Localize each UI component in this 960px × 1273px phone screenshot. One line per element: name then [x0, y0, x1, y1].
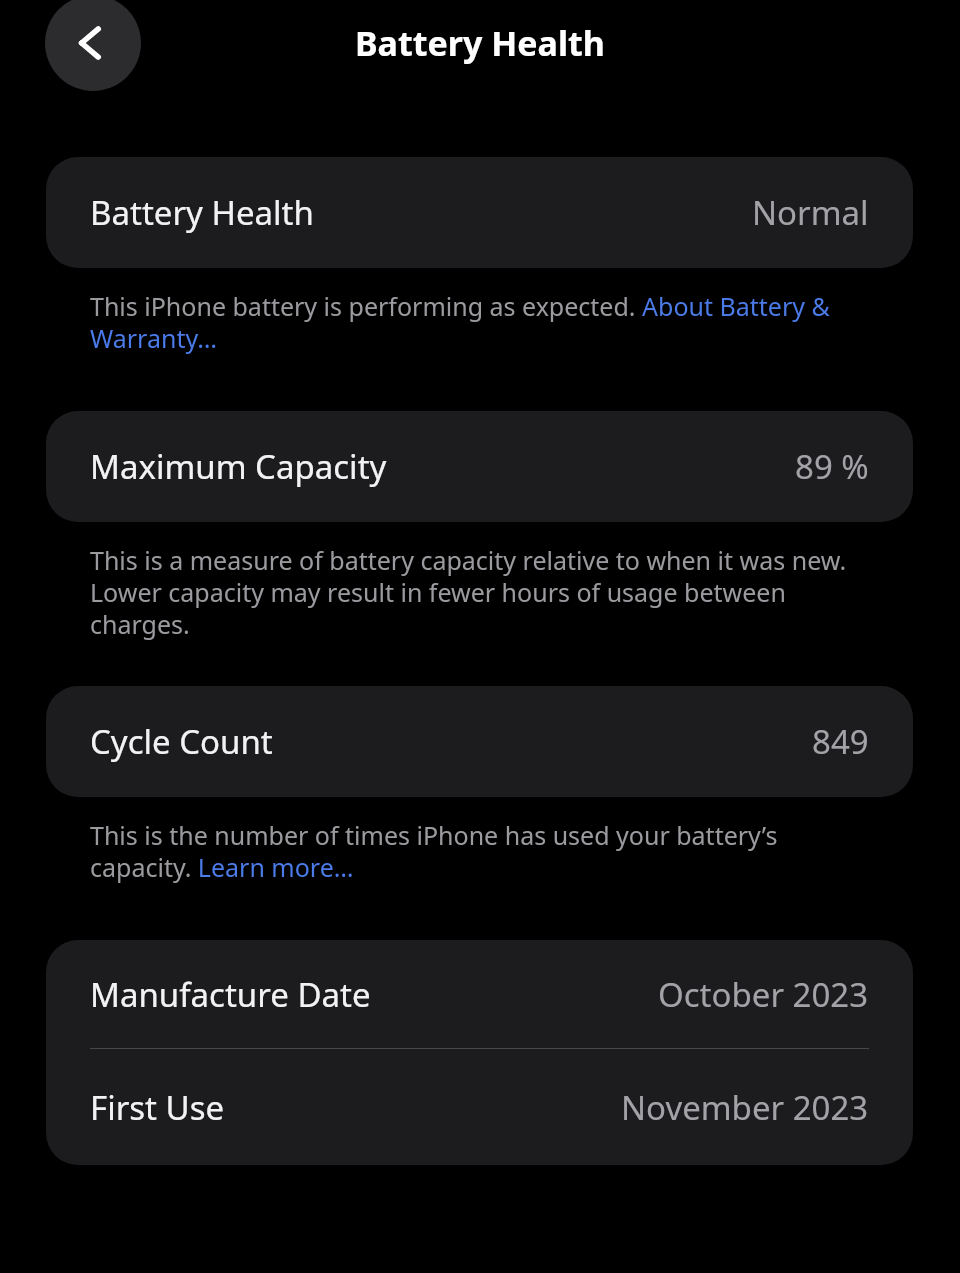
staticText: 89 %	[795, 444, 869, 489]
staticText: November 2023	[621, 1085, 869, 1130]
button[interactable]: Battery Health	[46, 157, 913, 268]
button[interactable]: Maximum Capacity	[46, 411, 913, 522]
staticText: Cycle Count	[90, 719, 273, 764]
staticText: This is a measure of battery capacity re…	[90, 543, 867, 641]
staticText: 849	[812, 719, 869, 764]
staticText: This iPhone battery is performing as exp…	[90, 289, 867, 355]
staticText: This is the number of times iPhone has u…	[90, 818, 867, 884]
staticText: Battery Health	[355, 20, 605, 66]
staticText: Maximum Capacity	[90, 444, 387, 489]
button[interactable]: Cycle Count	[46, 686, 913, 797]
staticText: Manufacture Date	[90, 972, 371, 1017]
staticText: Battery Health	[90, 190, 314, 235]
button[interactable]: Back	[45, 0, 141, 91]
button[interactable]: Manufacture Date	[46, 940, 913, 1048]
staticText: October 2023	[658, 972, 869, 1017]
staticText: First Use	[90, 1085, 225, 1130]
staticText: Normal	[752, 190, 869, 235]
button[interactable]: First Use	[46, 1049, 913, 1165]
